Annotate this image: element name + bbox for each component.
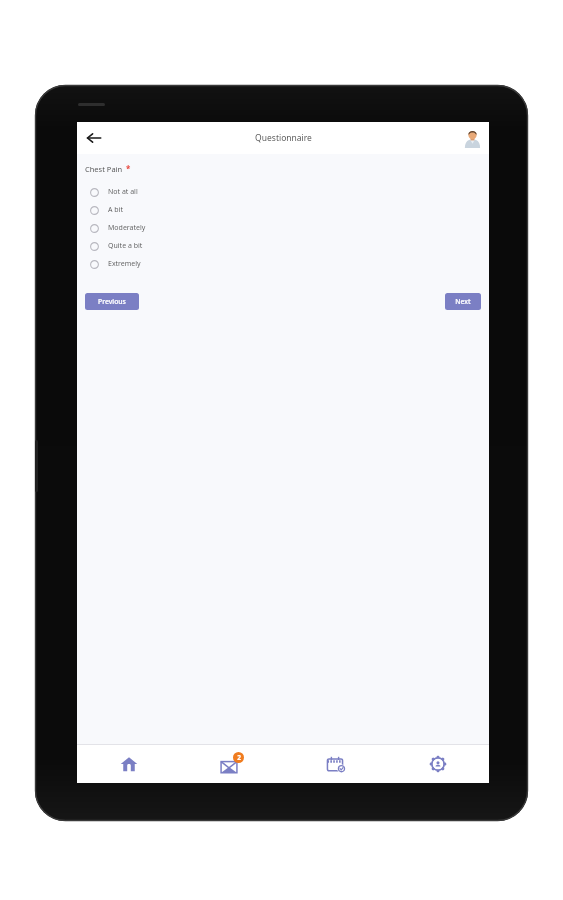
button[interactable]: Settings [386, 745, 489, 783]
staticText: Questionnaire [255, 132, 312, 144]
button[interactable]: Next [445, 293, 481, 310]
button[interactable]: Extremely [85, 255, 481, 273]
button[interactable]: Profile [461, 127, 483, 149]
staticText: * [126, 163, 131, 174]
staticText: Quite a bit [108, 241, 143, 251]
button[interactable]: Calendar [283, 745, 386, 783]
button[interactable]: Messages [180, 745, 283, 783]
button[interactable]: A bit [85, 201, 481, 219]
button[interactable]: Previous [85, 293, 139, 310]
staticText: Chest Pain [85, 164, 123, 174]
staticText: Previous [98, 297, 126, 306]
button[interactable]: Back [81, 125, 107, 151]
staticText: Extremely [108, 259, 141, 269]
button[interactable]: Not at all [85, 183, 481, 201]
button[interactable]: Moderately [85, 219, 481, 237]
staticText: A bit [108, 205, 123, 215]
staticText: Moderately [108, 223, 146, 233]
button[interactable]: Home [77, 745, 180, 783]
staticText: 2 [237, 753, 241, 762]
staticText: Next [455, 297, 471, 306]
staticText: Not at all [108, 187, 138, 197]
button[interactable]: Quite a bit [85, 237, 481, 255]
